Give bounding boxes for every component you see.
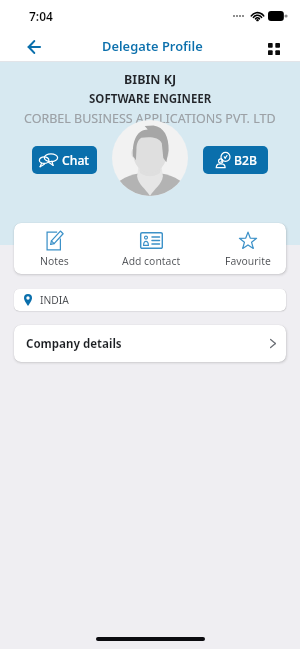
staticText: Company details (26, 336, 122, 352)
button[interactable]: Chat (32, 146, 97, 174)
staticText: SOFTWARE ENGINEER (89, 91, 212, 107)
staticText: B2B (234, 152, 257, 169)
staticText: Delegate Profile (102, 37, 203, 55)
staticText: 7:04 (29, 8, 53, 24)
button[interactable]: Notes (40, 226, 69, 272)
button[interactable]: INDIA (14, 289, 286, 311)
button[interactable]: Grid view (261, 36, 287, 62)
button[interactable]: Company details (14, 325, 286, 362)
staticText: Notes (40, 254, 69, 268)
staticText: Favourite (225, 254, 271, 268)
button[interactable]: Back (20, 33, 47, 60)
staticText: Chat (62, 152, 90, 169)
button[interactable]: B2B (203, 146, 268, 174)
staticText: Add contact (122, 254, 181, 268)
button[interactable]: Favourite (225, 226, 271, 272)
button[interactable]: Add contact (122, 226, 181, 272)
staticText: CORBEL BUSINESS APPLICATIONS PVT. LTD (24, 110, 276, 127)
staticText: BIBIN KJ (124, 71, 177, 88)
staticText: INDIA (40, 293, 69, 307)
